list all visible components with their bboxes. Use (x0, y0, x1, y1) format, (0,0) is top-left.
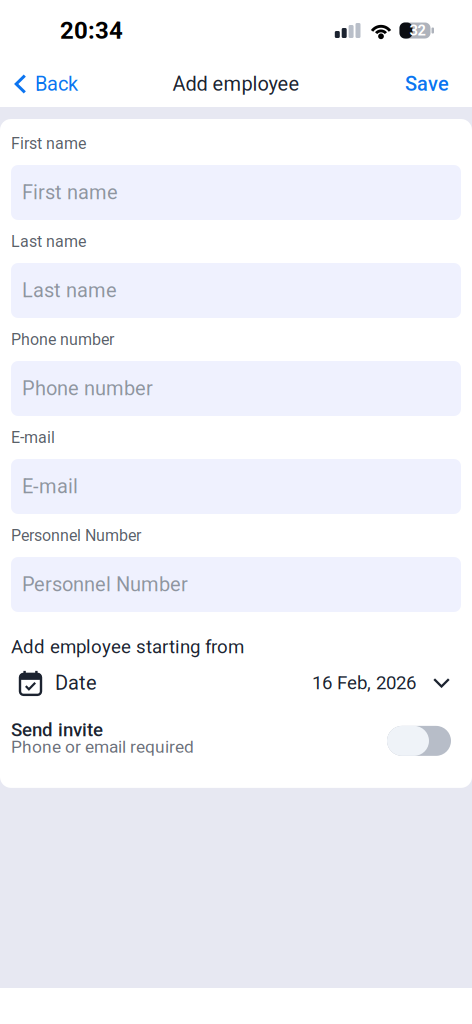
staticText: First name (22, 181, 118, 204)
button[interactable]: Last name (11, 263, 461, 318)
staticText: Last name (22, 279, 117, 302)
button[interactable]: Save (393, 61, 472, 107)
button[interactable]: E-mail (11, 459, 461, 514)
staticText: 32 (409, 22, 425, 39)
staticText: Last name (11, 232, 86, 251)
staticText: Add employee starting from (11, 636, 244, 658)
button[interactable]: Personnel Number (11, 557, 461, 612)
staticText: Phone number (22, 377, 153, 400)
staticText: Add employee (172, 72, 299, 96)
staticText: E-mail (11, 428, 55, 447)
staticText: Personnel Number (22, 573, 188, 596)
staticText: 20:34 (60, 16, 123, 44)
staticText: Back (35, 72, 78, 96)
staticText: Personnel Number (11, 526, 141, 545)
button[interactable]: First name (11, 165, 461, 220)
staticText: Save (405, 72, 449, 96)
staticText: Phone or email required (11, 737, 194, 757)
staticText: Send invite (11, 719, 103, 741)
button[interactable]: Back (0, 61, 90, 107)
staticText: Phone number (11, 330, 114, 349)
button[interactable]: Send invite (0, 721, 472, 756)
staticText: 16 Feb, 2026 (312, 672, 416, 694)
staticText: Date (55, 671, 97, 695)
staticText: E-mail (22, 475, 78, 498)
button[interactable]: Phone number (11, 361, 461, 416)
button[interactable]: Date (0, 668, 472, 698)
staticText: First name (11, 134, 86, 153)
